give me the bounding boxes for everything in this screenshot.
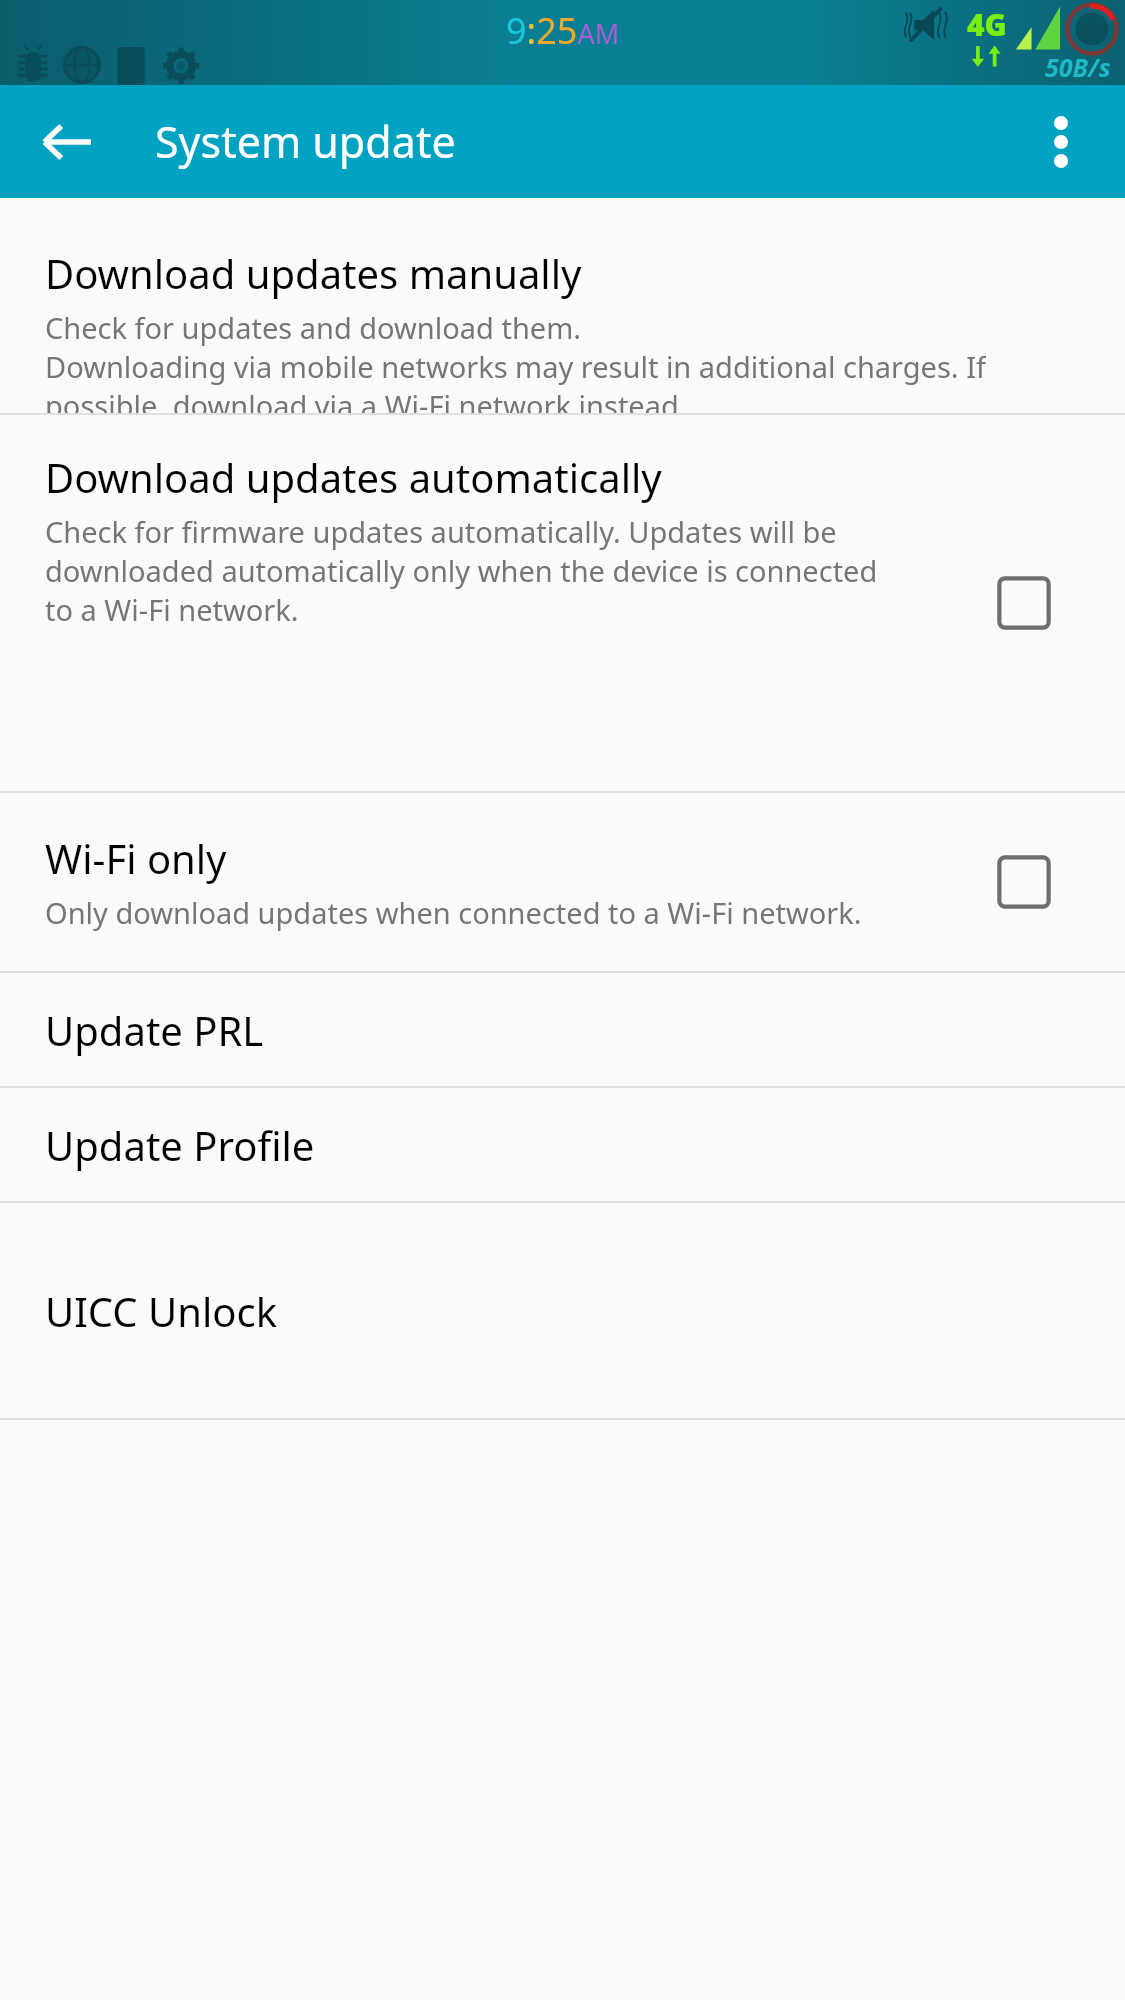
staticText: Check for firmware updates automatically… [45, 512, 878, 629]
staticText: Wi-Fi only [45, 831, 227, 885]
button[interactable]: Download updates manually [0, 198, 1125, 413]
staticText: 50B/s [1045, 50, 1111, 84]
staticText: 9:25AM [506, 6, 620, 55]
staticText: Check for updates and download them. Dow… [45, 308, 986, 413]
staticText: Only download updates when connected to … [45, 893, 862, 932]
button[interactable]: More options [1023, 104, 1099, 180]
button[interactable]: Download updates automatically [0, 415, 1125, 791]
button[interactable]: Update PRL [0, 973, 1125, 1086]
button[interactable]: Download updates automatically checkbox [979, 558, 1069, 648]
button[interactable]: UICC Unlock [0, 1203, 1125, 1418]
staticText: Download updates manually [45, 246, 582, 300]
staticText: UICC Unlock [45, 1284, 277, 1338]
button[interactable]: Update Profile [0, 1088, 1125, 1201]
staticText: Update Profile [45, 1118, 315, 1172]
staticText: 4G [967, 4, 1007, 45]
staticText: System update [155, 112, 456, 171]
staticText: Download updates automatically [45, 450, 662, 504]
button[interactable]: Wi-Fi only [0, 793, 1125, 971]
staticText: Update PRL [45, 1003, 264, 1057]
button[interactable]: Back [26, 101, 108, 183]
button[interactable]: Wi-Fi only checkbox [979, 837, 1069, 927]
